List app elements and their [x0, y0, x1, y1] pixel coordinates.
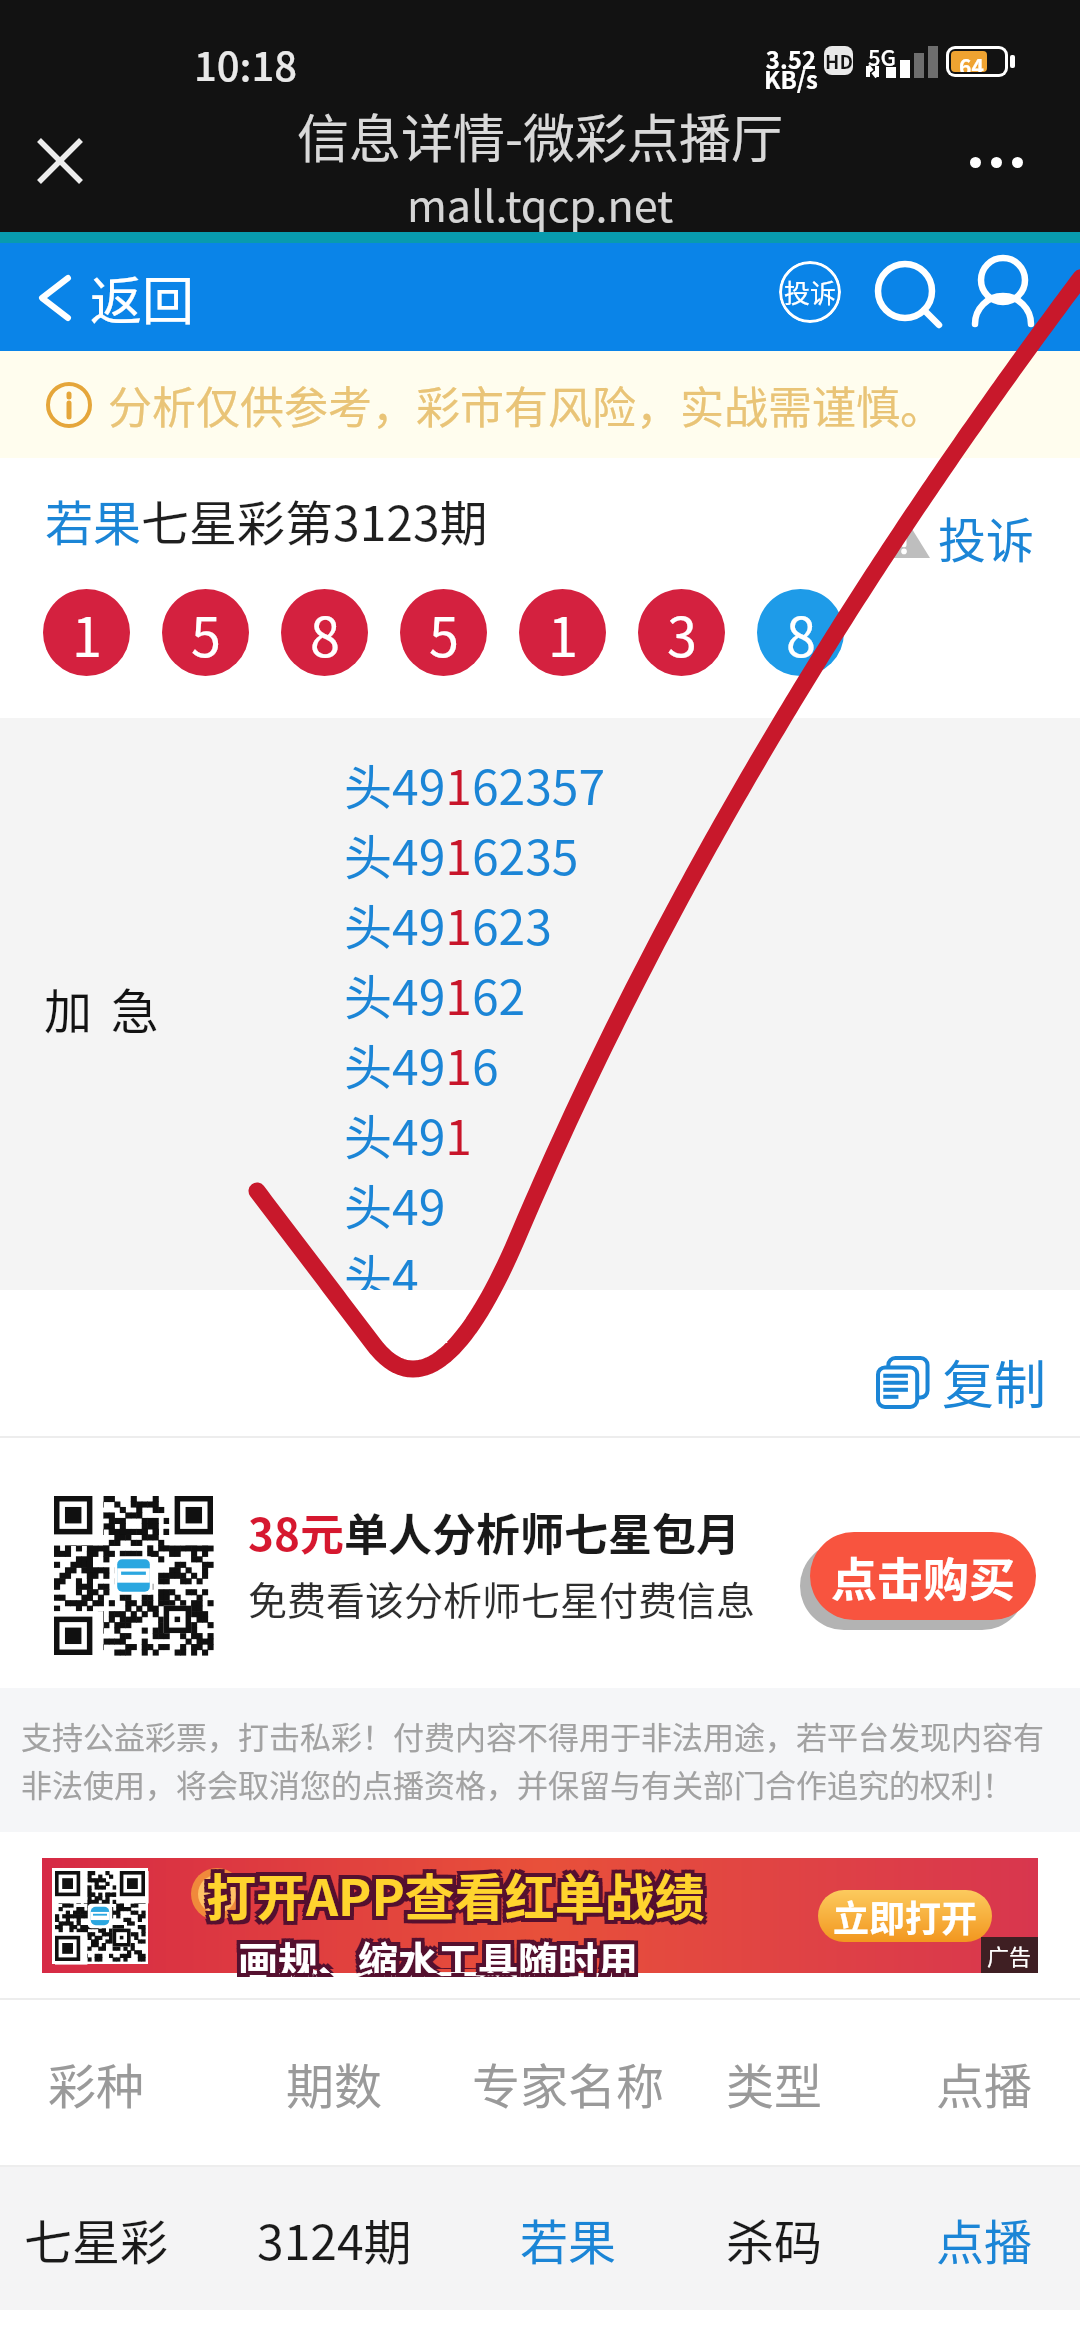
- staticText: 画规、缩水工具随时用: [242, 1934, 642, 1977]
- button[interactable]: 点击购买: [810, 1532, 1036, 1620]
- staticText: 8: [310, 594, 340, 672]
- button[interactable]: 投诉: [769, 251, 851, 333]
- button[interactable]: Account: [962, 247, 1046, 331]
- staticText: 画规、缩水工具随时用: [234, 1926, 634, 1969]
- staticText: 期数: [286, 2048, 383, 2118]
- staticText: 头49162: [344, 959, 526, 1029]
- staticText: 立即打开: [833, 1890, 978, 1942]
- staticText: 类型: [726, 2048, 823, 2118]
- staticText: 返回: [90, 260, 195, 335]
- staticText: 打开APP查看红单战绩: [206, 1854, 705, 1926]
- staticText: 画规、缩水工具随时用: [234, 1934, 634, 1977]
- staticText: 画规、缩水工具随时用: [238, 1930, 638, 1973]
- staticText: 3.52 KB/s: [764, 41, 818, 96]
- staticText: 画规、缩水工具随时用: [242, 1926, 642, 1969]
- staticText: 打开APP查看红单战绩: [206, 1858, 705, 1930]
- staticText: 分析仅供参考，彩市有风险，实战需谨慎。: [108, 373, 944, 437]
- staticText: 头49162357: [344, 749, 606, 819]
- staticText: 画规、缩水工具随时用: [238, 1930, 638, 1973]
- staticText: 38元单人分析师七星包月: [248, 1500, 740, 1564]
- staticText: 专家名称: [472, 2048, 665, 2118]
- staticText: 点播: [936, 2204, 1033, 2274]
- button[interactable]: 投诉: [876, 502, 1035, 572]
- staticText: 8: [786, 594, 816, 672]
- staticText: 打开APP查看红单战绩: [202, 1858, 701, 1930]
- staticText: 5: [429, 594, 459, 672]
- staticText: 画规、缩水工具随时用: [234, 1930, 634, 1973]
- staticText: 画规、缩水工具随时用: [238, 1934, 638, 1977]
- staticText: 画规、缩水工具随时用: [242, 1930, 642, 1973]
- staticText: 画规、缩水工具随时用: [238, 1926, 638, 1969]
- staticText: 打开APP查看红单战绩: [206, 1862, 705, 1934]
- staticText: 打开APP查看红单战绩: [210, 1854, 709, 1926]
- staticText: 3: [667, 594, 697, 672]
- staticText: 64: [959, 51, 984, 72]
- staticText: 信息详情-微彩点播厅: [297, 98, 784, 173]
- staticText: 彩种: [48, 2048, 145, 2118]
- button[interactable]: 打开APP查看红单战绩: [42, 1858, 1038, 1973]
- staticText: 头491: [344, 1099, 472, 1169]
- staticText: 点击购买: [831, 1543, 1015, 1610]
- button[interactable]: 复制: [876, 1344, 1047, 1419]
- staticText: 打开APP查看红单战绩: [210, 1862, 709, 1934]
- staticText: 头4: [344, 1239, 419, 1309]
- staticText: 打开APP查看红单战绩: [210, 1858, 709, 1930]
- button[interactable]: Close: [16, 117, 104, 205]
- staticText: 复制: [942, 1344, 1047, 1419]
- staticText: 3124期: [257, 2204, 412, 2274]
- staticText: 1: [548, 594, 578, 672]
- button[interactable]: 七星彩: [0, 2167, 1080, 2310]
- button[interactable]: More options: [952, 118, 1040, 206]
- staticText: 5G: [868, 40, 896, 72]
- staticText: 头491623: [344, 889, 552, 959]
- staticText: 免费看该分析师七星付费信息: [248, 1570, 756, 1626]
- staticText: 杀码: [726, 2204, 823, 2274]
- staticText: HD: [825, 47, 853, 75]
- staticText: mall.tqcp.net: [407, 172, 674, 234]
- staticText: 1: [72, 594, 102, 672]
- staticText: 10:18: [194, 35, 298, 93]
- staticText: 若果: [520, 2204, 617, 2274]
- staticText: 七星彩: [24, 2204, 169, 2274]
- staticText: 投诉: [784, 273, 837, 311]
- staticText: 5: [191, 594, 221, 672]
- staticText: 支持公益彩票，打击私彩！付费内容不得用于非法用途，若平台发现内容有非法使用，将会…: [21, 1713, 1072, 1806]
- staticText: 投诉: [938, 502, 1035, 572]
- staticText: 点播: [936, 2048, 1033, 2118]
- staticText: 若果七星彩第3123期: [45, 485, 488, 555]
- staticText: 头4916235: [344, 819, 579, 889]
- staticText: 打开APP查看红单战绩: [202, 1862, 701, 1934]
- button[interactable]: Search: [864, 247, 948, 331]
- staticText: 加 急: [44, 973, 163, 1043]
- staticText: 头4916: [344, 1029, 499, 1099]
- staticText: 头49: [344, 1169, 446, 1239]
- staticText: 广告: [987, 1939, 1032, 1971]
- staticText: 打开APP查看红单战绩: [206, 1858, 705, 1930]
- button[interactable]: 返回: [40, 250, 195, 345]
- staticText: 打开APP查看红单战绩: [202, 1854, 701, 1926]
